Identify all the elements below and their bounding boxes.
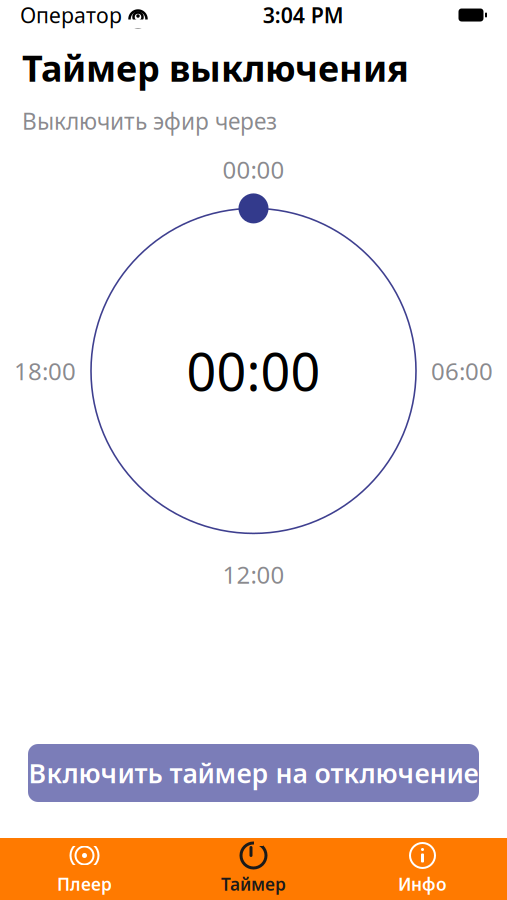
staticText: Включить таймер на отключение bbox=[28, 755, 478, 791]
staticText: 3:04 PM bbox=[263, 1, 344, 29]
button[interactable]: Включить таймер на отключение bbox=[28, 744, 479, 802]
staticText: 06:00 bbox=[431, 355, 493, 387]
staticText: 12:00 bbox=[222, 558, 284, 590]
staticText: 18:00 bbox=[14, 355, 76, 387]
staticText: Плеер bbox=[57, 872, 112, 895]
staticText: Выключить эфир через bbox=[22, 106, 277, 136]
button[interactable]: Плеер bbox=[0, 838, 169, 900]
button[interactable]: Инфо bbox=[338, 838, 507, 900]
staticText: Оператор bbox=[20, 1, 122, 29]
staticText: Таймер bbox=[221, 872, 286, 895]
staticText: 00:00 bbox=[186, 336, 320, 405]
staticText: 00:00 bbox=[222, 153, 284, 185]
staticText: Таймер выключения bbox=[22, 44, 409, 92]
staticText: Инфо bbox=[398, 872, 447, 895]
button[interactable]: Таймер bbox=[169, 838, 338, 900]
